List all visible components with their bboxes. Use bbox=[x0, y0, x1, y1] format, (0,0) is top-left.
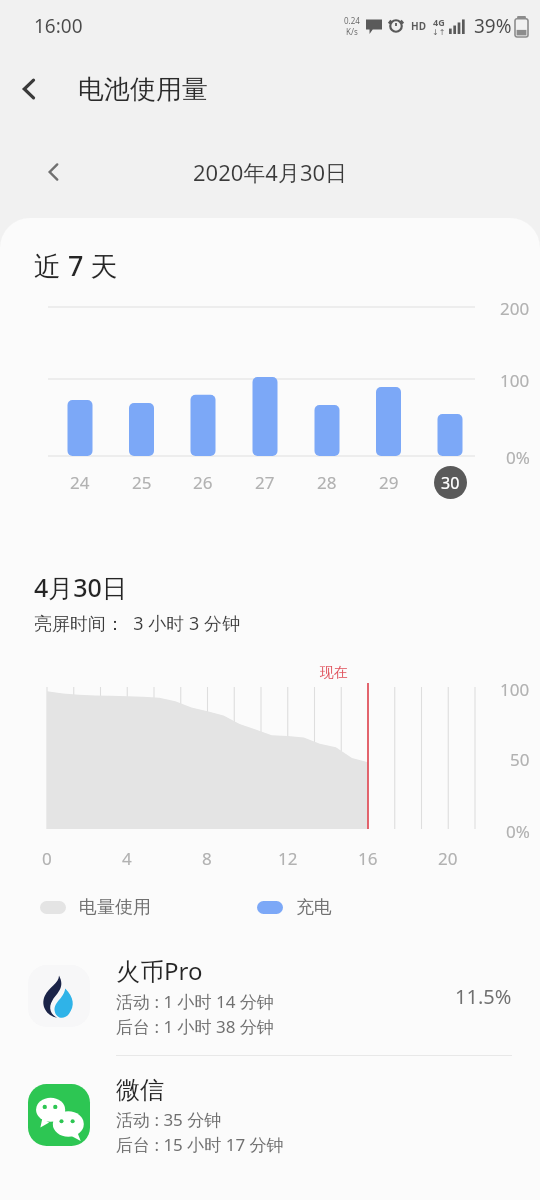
staticText: 4 bbox=[122, 847, 132, 870]
staticText: 8 bbox=[202, 847, 212, 870]
staticText: 0% bbox=[506, 820, 530, 843]
staticText: 活动 : 35 分钟 bbox=[116, 1108, 222, 1131]
staticText: ↓↑ bbox=[432, 28, 446, 37]
staticText: 24 bbox=[70, 471, 90, 494]
staticText: 28 bbox=[317, 471, 337, 494]
staticText: 100 bbox=[500, 678, 530, 701]
staticText: K/s bbox=[346, 26, 358, 37]
staticText: 微信 bbox=[116, 1075, 164, 1105]
staticText: 充电 bbox=[296, 896, 332, 919]
staticText: 电池使用量 bbox=[78, 73, 208, 106]
staticText: 20 bbox=[438, 847, 458, 870]
staticText: 16:00 bbox=[34, 13, 83, 39]
staticText: 亮屏时间： 3 小时 3 分钟 bbox=[34, 611, 240, 636]
staticText: HD bbox=[411, 19, 426, 33]
staticText: 16 bbox=[358, 847, 378, 870]
button[interactable]: Previous day bbox=[34, 152, 74, 192]
staticText: 100 bbox=[500, 369, 530, 392]
staticText: 4月30日 bbox=[34, 570, 127, 604]
staticText: 200 bbox=[500, 297, 530, 320]
staticText: 后台 : 15 小时 17 分钟 bbox=[116, 1133, 284, 1156]
staticText: 2020年4月30日 bbox=[193, 157, 348, 187]
staticText: 电量使用 bbox=[79, 896, 151, 919]
staticText: 27 bbox=[255, 471, 275, 494]
staticText: 后台 : 1 小时 38 分钟 bbox=[116, 1015, 274, 1038]
staticText: 0% bbox=[506, 446, 530, 469]
staticText: 0 bbox=[42, 847, 52, 870]
button[interactable]: Back bbox=[0, 59, 60, 119]
staticText: 30 bbox=[441, 472, 460, 494]
staticText: 0.24 bbox=[344, 15, 360, 26]
staticText: 现在 bbox=[320, 664, 348, 682]
staticText: 4G bbox=[433, 16, 445, 28]
staticText: 26 bbox=[193, 471, 213, 494]
staticText: 50 bbox=[510, 748, 530, 771]
staticText: 活动 : 1 小时 14 分钟 bbox=[116, 990, 274, 1013]
button[interactable]: Back bbox=[0, 52, 540, 126]
button[interactable]: 30 bbox=[434, 466, 467, 499]
staticText: 11.5% bbox=[455, 983, 512, 1010]
button[interactable]: 火币Pro bbox=[0, 937, 540, 1056]
staticText: 39% bbox=[474, 13, 512, 39]
staticText: 12 bbox=[278, 847, 298, 870]
staticText: 25 bbox=[132, 471, 152, 494]
staticText: 近 7 天 bbox=[34, 247, 118, 284]
staticText: 火币Pro bbox=[116, 954, 203, 987]
staticText: 29 bbox=[379, 471, 399, 494]
button[interactable]: 微信 bbox=[0, 1056, 540, 1174]
